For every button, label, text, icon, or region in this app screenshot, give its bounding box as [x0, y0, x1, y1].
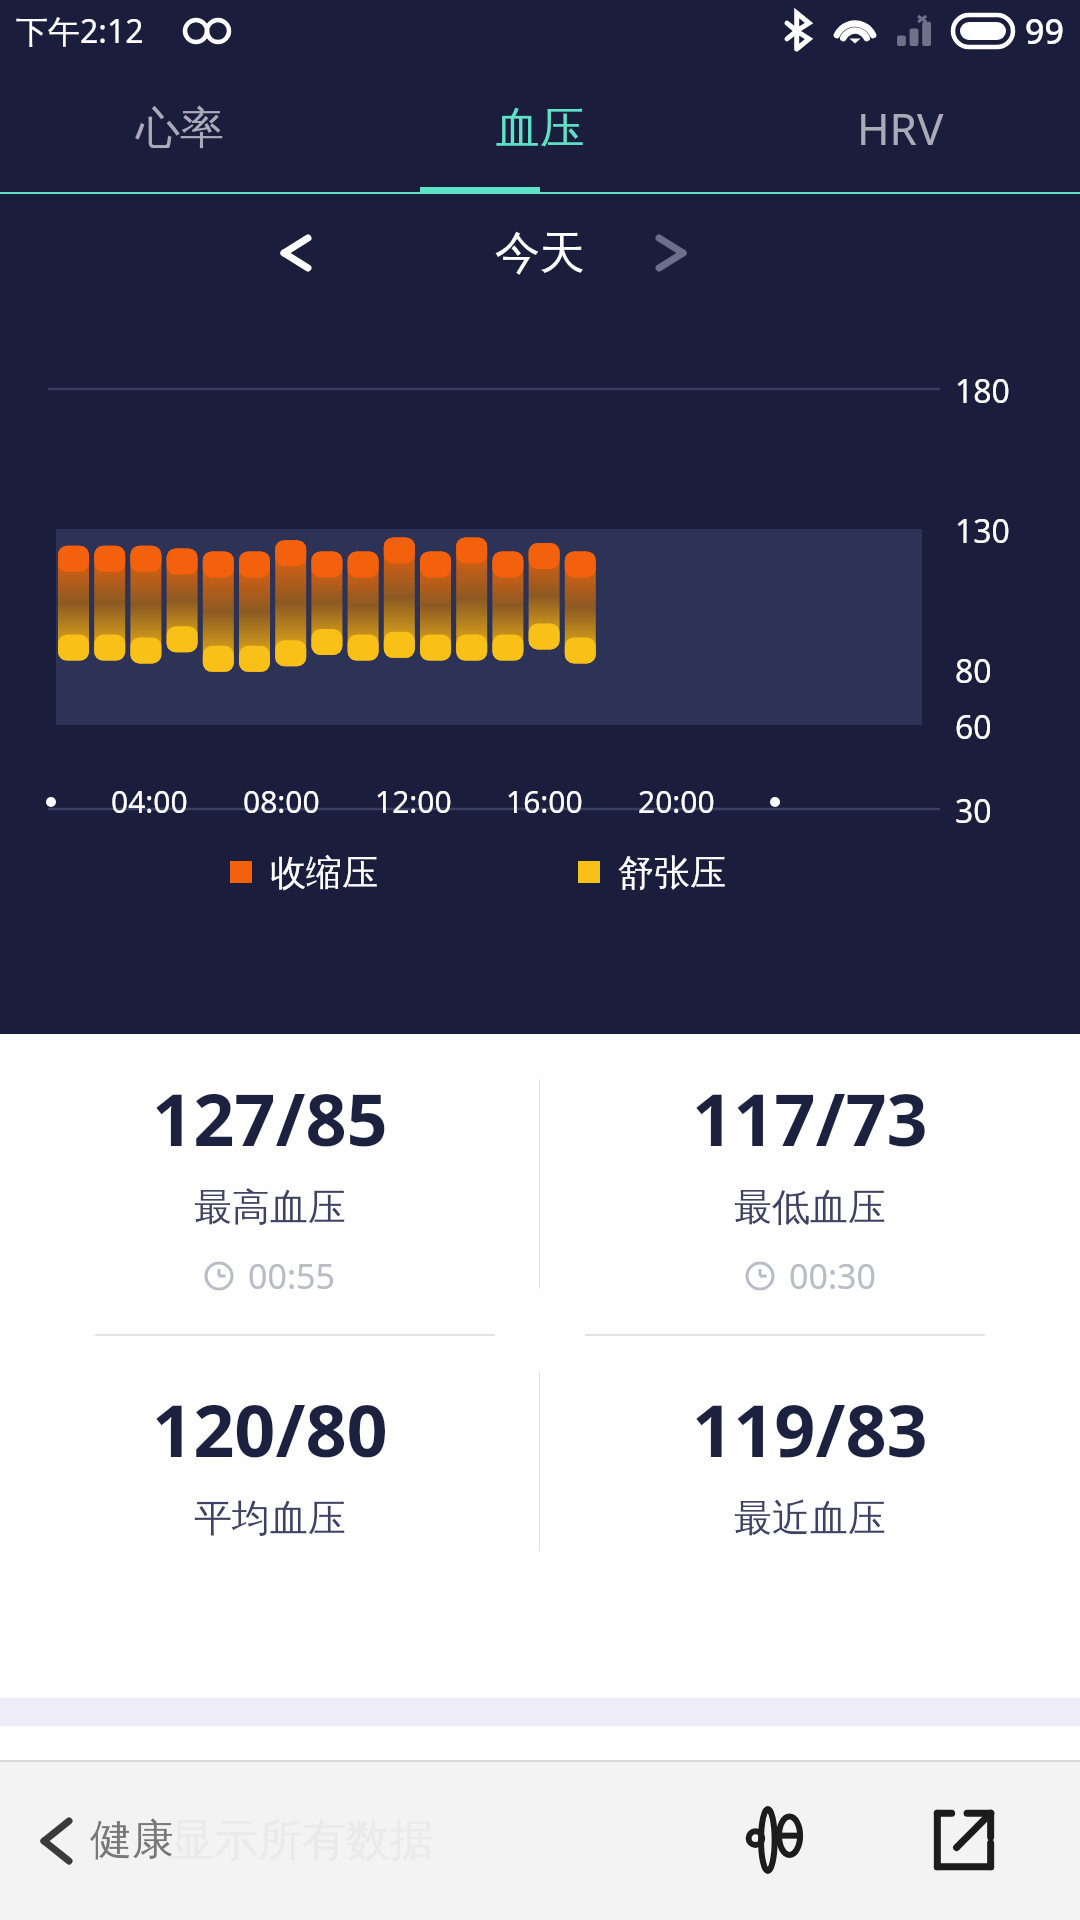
staticText: 健康 — [90, 1814, 174, 1867]
staticText: 00:55 — [248, 1253, 335, 1299]
staticText: 心率 — [136, 101, 224, 156]
staticText: 127/85 — [152, 1069, 388, 1167]
button[interactable]: HRV — [720, 62, 1080, 194]
staticText: 30 — [955, 789, 992, 833]
staticText: 08:00 — [243, 781, 320, 822]
staticText: HRV — [857, 98, 944, 158]
staticText: 最低血压 — [734, 1183, 886, 1231]
staticText: 今天 — [495, 225, 585, 282]
button[interactable]: 健康 — [40, 1814, 174, 1867]
staticText: 16:00 — [506, 781, 583, 822]
staticText: 20:00 — [638, 781, 715, 822]
button[interactable]: 心率 — [0, 62, 360, 194]
staticText: 最高血压 — [194, 1183, 346, 1231]
staticText: 117/73 — [692, 1069, 928, 1167]
staticText: 平均血压 — [194, 1494, 346, 1542]
button[interactable]: 117/73 — [540, 1034, 1080, 1334]
staticText: 收缩压 — [270, 850, 378, 895]
staticText: 130 — [955, 509, 1010, 553]
staticText: 下午2:12 — [16, 9, 144, 53]
staticText: 血压 — [496, 101, 584, 156]
staticText: 60 — [955, 705, 992, 749]
button[interactable]: 120/80 — [0, 1336, 539, 1586]
staticText: 120/80 — [152, 1380, 388, 1478]
staticText: 最近血压 — [734, 1494, 886, 1542]
button[interactable]: 上一天 — [260, 218, 330, 288]
staticText: 00:30 — [789, 1253, 876, 1299]
staticText: 180 — [955, 369, 1010, 413]
staticText: 119/83 — [692, 1380, 928, 1478]
button[interactable]: 血压 — [360, 62, 720, 194]
staticText: 显示所有数据 — [170, 1813, 434, 1868]
staticText: 99 — [1025, 8, 1064, 54]
staticText: 舒张压 — [618, 850, 726, 895]
staticText: 12:00 — [375, 781, 452, 822]
button[interactable]: 下一天 — [635, 218, 705, 288]
button[interactable]: 119/83 — [540, 1336, 1080, 1586]
staticText: 80 — [955, 649, 992, 693]
button[interactable]: 测量 — [733, 1794, 825, 1886]
button[interactable]: 127/85 — [0, 1034, 539, 1334]
button[interactable]: 分享 — [918, 1794, 1010, 1886]
staticText: 04:00 — [111, 781, 188, 822]
